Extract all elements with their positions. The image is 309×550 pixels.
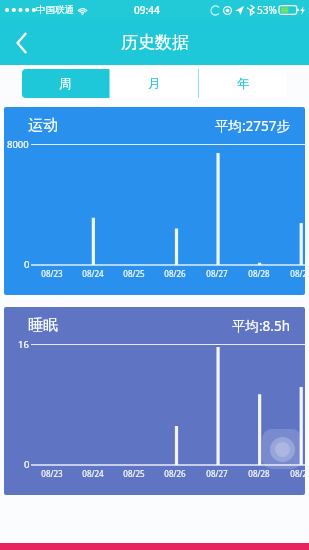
button[interactable]: 年 <box>199 69 287 98</box>
staticText: 平均:2757步 <box>215 117 291 135</box>
button[interactable]: 月 <box>110 69 198 98</box>
staticText: 历史数据 <box>121 32 189 53</box>
staticText: 08/24 <box>82 468 104 479</box>
staticText: 08/25 <box>123 468 145 479</box>
staticText: 睡眠 <box>28 316 58 335</box>
staticText: 平均:8.5h <box>232 317 291 335</box>
staticText: 08/27 <box>206 268 228 279</box>
staticText: 53% <box>257 3 277 17</box>
staticText: 08/24 <box>82 268 104 279</box>
staticText: 8000 <box>7 138 29 151</box>
staticText: 中国联通 <box>36 4 74 16</box>
staticText: 周 <box>59 76 72 92</box>
button[interactable]: Assistive touch <box>262 429 302 469</box>
staticText: 08/26 <box>164 268 186 279</box>
button[interactable]: 周 <box>22 69 109 98</box>
staticText: 年 <box>237 76 250 92</box>
staticText: 08/25 <box>123 268 145 279</box>
staticText: 09:44 <box>134 3 160 17</box>
staticText: 08/23 <box>41 268 63 279</box>
staticText: 08/28 <box>248 268 270 279</box>
button[interactable]: 睡眠 <box>4 307 305 495</box>
staticText: 运动 <box>28 116 58 135</box>
staticText: 0 <box>24 458 30 471</box>
staticText: 08/29 <box>290 468 305 479</box>
staticText: 0 <box>24 258 30 271</box>
staticText: 08/28 <box>248 468 270 479</box>
staticText: 月 <box>148 76 161 92</box>
staticText: 08/29 <box>290 268 305 279</box>
staticText: 16 <box>18 338 29 351</box>
staticText: 08/27 <box>206 468 228 479</box>
button[interactable]: 运动 <box>4 107 305 295</box>
button[interactable]: Back <box>0 21 44 65</box>
staticText: 08/26 <box>164 468 186 479</box>
staticText: 08/23 <box>41 468 63 479</box>
